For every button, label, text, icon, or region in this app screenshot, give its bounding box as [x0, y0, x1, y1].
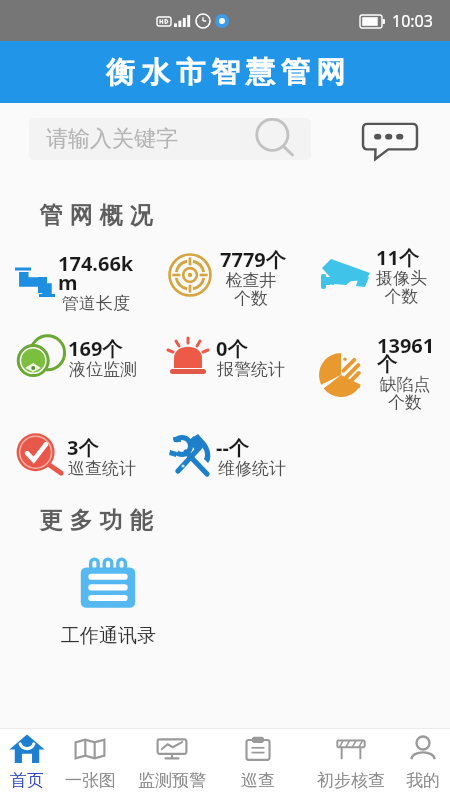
staticText: --个: [216, 434, 249, 461]
button[interactable]: 169个: [68, 335, 138, 383]
staticText: 13961 个: [377, 332, 433, 377]
staticText: 3个: [67, 434, 99, 461]
staticText: 衡水市智慧管网: [103, 54, 348, 91]
staticText: 巡查: [241, 770, 275, 791]
button[interactable]: 工作通讯录: [58, 558, 158, 648]
button[interactable]: 巡查: [218, 729, 298, 800]
button[interactable]: 监测预警: [132, 729, 212, 800]
button[interactable]: 0个: [216, 335, 286, 383]
staticText: 0个: [216, 335, 248, 362]
staticText: 巡查统计: [67, 458, 137, 479]
staticText: 报警统计: [216, 359, 286, 380]
staticText: 7779个: [220, 246, 282, 273]
button[interactable]: 我的: [383, 729, 450, 800]
staticText: 更多功能: [36, 506, 156, 535]
staticText: 174.66k m: [58, 250, 134, 296]
button[interactable]: 13961 个: [377, 332, 433, 416]
staticText: 169个: [68, 335, 123, 362]
button[interactable]: 174.66k m: [58, 250, 134, 317]
staticText: 10:03: [392, 10, 433, 32]
staticText: 11个: [376, 244, 419, 271]
staticText: 我的: [406, 770, 440, 791]
staticText: 缺陷点 个数: [377, 374, 433, 413]
button[interactable]: 7779个: [220, 246, 282, 312]
button[interactable]: 3个: [67, 434, 137, 482]
staticText: 管道长度: [58, 293, 134, 314]
button[interactable]: Messages: [355, 118, 425, 164]
button[interactable]: --个: [216, 434, 288, 482]
button[interactable]: 11个: [376, 244, 426, 310]
staticText: 摄像头 个数: [376, 268, 426, 307]
staticText: 检查井 个数: [220, 270, 282, 309]
staticText: 监测预警: [138, 770, 206, 791]
staticText: 液位监测: [68, 359, 138, 380]
button[interactable]: 请输入关键字: [29, 118, 311, 160]
staticText: 管网概况: [36, 201, 156, 230]
staticText: 维修统计: [216, 458, 288, 479]
button[interactable]: 初步核查: [311, 729, 391, 800]
staticText: 请输入关键字: [46, 125, 178, 153]
button[interactable]: 一张图: [50, 729, 130, 800]
staticText: 首页: [10, 770, 44, 791]
staticText: 初步核查: [317, 770, 385, 791]
staticText: 工作通讯录: [61, 624, 156, 648]
staticText: 一张图: [65, 770, 116, 791]
button[interactable]: 首页: [0, 729, 67, 800]
